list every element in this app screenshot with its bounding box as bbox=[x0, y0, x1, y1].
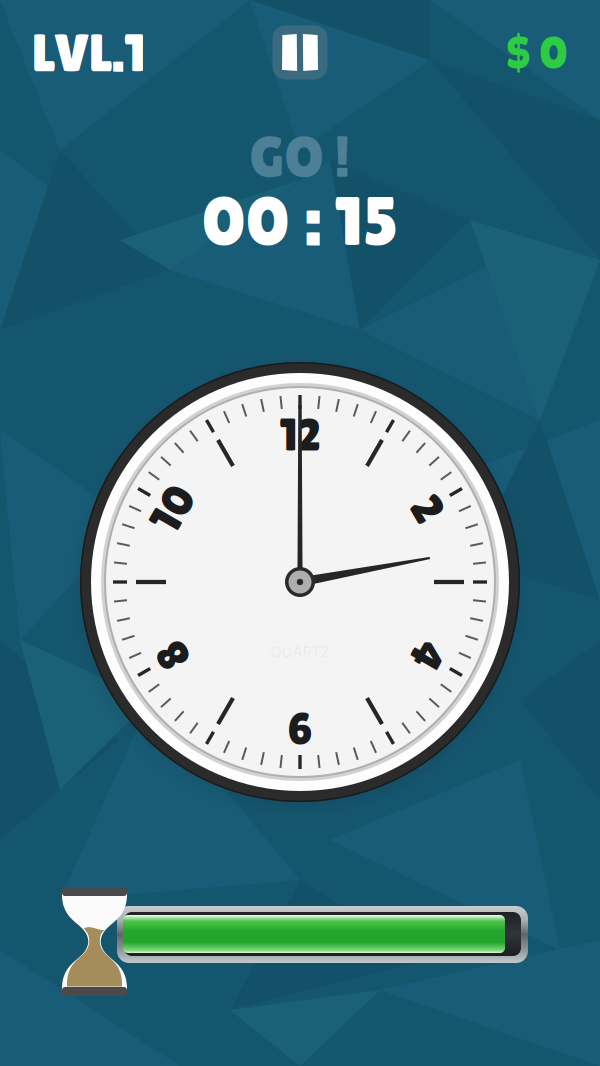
button[interactable]: $ 0 bbox=[506, 27, 568, 78]
staticText: 00 : 15 bbox=[201, 181, 398, 260]
staticText: GO ! bbox=[249, 125, 350, 189]
staticText: 10 bbox=[150, 483, 196, 534]
staticText: 6 bbox=[287, 704, 312, 754]
staticText: LVL.1 bbox=[32, 22, 146, 83]
staticText: 12 bbox=[279, 410, 320, 460]
staticText: 8 bbox=[160, 630, 185, 681]
button[interactable]: Pause bbox=[272, 25, 327, 79]
staticText: QUARTZ bbox=[270, 643, 329, 661]
staticText: $ 0 bbox=[506, 27, 568, 78]
staticText: 2 bbox=[416, 483, 439, 534]
button[interactable]: LVL.1 bbox=[32, 22, 146, 83]
staticText: 4 bbox=[414, 630, 440, 681]
